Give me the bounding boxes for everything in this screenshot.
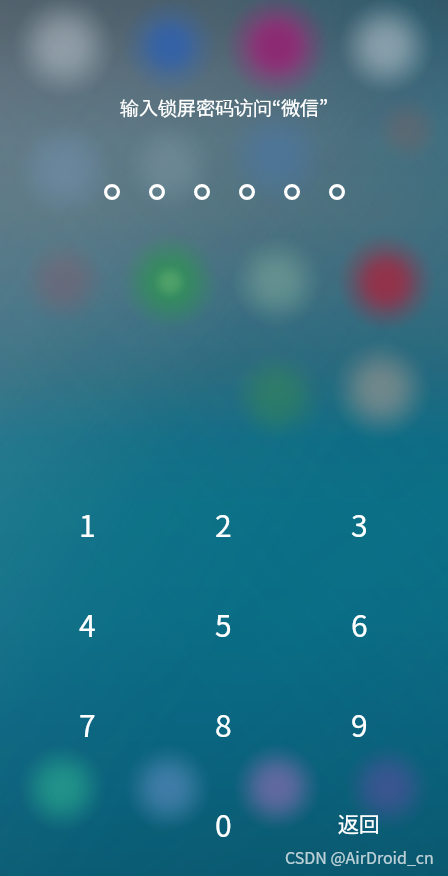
other: Password dot [323, 178, 351, 206]
staticText: 8 [215, 702, 232, 745]
button[interactable]: 5 [155, 573, 291, 673]
other: Password dot [143, 178, 171, 206]
other: Password dot [233, 178, 261, 206]
other: Password dot [278, 178, 306, 206]
other: Password dot [188, 178, 216, 206]
button[interactable]: 1 [19, 473, 155, 573]
button[interactable]: 9 [291, 673, 427, 773]
staticText: 4 [79, 602, 96, 645]
button[interactable]: 8 [155, 673, 291, 773]
staticText: 9 [351, 702, 368, 745]
button[interactable]: 3 [291, 473, 427, 573]
button[interactable]: 7 [19, 673, 155, 773]
button[interactable]: 返回 [291, 773, 427, 873]
button[interactable] [19, 773, 155, 873]
staticText: 1 [79, 502, 96, 545]
staticText: 3 [351, 502, 368, 545]
staticText: CSDN @AirDroid_cn [285, 845, 434, 868]
staticText: 5 [215, 602, 232, 645]
button[interactable]: 0 [155, 773, 291, 873]
staticText: 2 [215, 502, 232, 545]
staticText: 返回 [338, 808, 380, 838]
button[interactable]: 2 [155, 473, 291, 573]
staticText: 0 [215, 802, 232, 845]
button[interactable]: 6 [291, 573, 427, 673]
button[interactable]: 4 [19, 573, 155, 673]
staticText: 7 [79, 702, 96, 745]
staticText: 输入锁屏密码访问“微信” [0, 93, 448, 121]
other: Password dot [98, 178, 126, 206]
staticText: 6 [351, 602, 368, 645]
